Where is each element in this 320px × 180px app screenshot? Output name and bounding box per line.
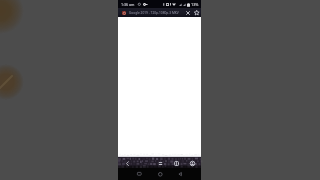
staticText: 13% — [191, 2, 199, 7]
button[interactable]: Back — [174, 168, 186, 180]
button[interactable]: Tabs — [170, 158, 183, 168]
staticText: 1:36 am — [121, 2, 135, 7]
button[interactable]: Recents — [133, 168, 145, 180]
button[interactable]: Back — [121, 158, 134, 168]
staticText: Google 2019 - 720p-1080p-3 MKV — [129, 11, 179, 15]
button[interactable]: Stop loading — [184, 8, 192, 17]
button[interactable]: Bookmark — [192, 8, 200, 17]
button[interactable]: Menu — [154, 158, 167, 168]
button[interactable]: Home — [154, 168, 166, 180]
button[interactable]: Account — [186, 158, 199, 168]
